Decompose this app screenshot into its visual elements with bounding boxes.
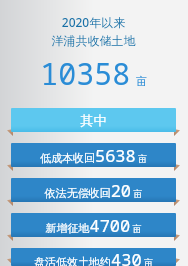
button[interactable]: 盘活低效土地约430 亩 [11, 248, 176, 266]
staticText: 其中 [11, 112, 176, 128]
staticText: 依法无偿收回20 亩 [11, 179, 176, 202]
button[interactable]: 依法无偿收回20 亩 [11, 178, 176, 202]
button[interactable]: 新增征地4700 亩 [11, 213, 176, 237]
staticText: 洋浦共收储土地 [5, 33, 182, 48]
staticText: 10358 亩 [5, 53, 182, 94]
staticText: 低成本收回5638 亩 [11, 144, 176, 167]
button[interactable]: 其中 [11, 108, 176, 132]
staticText: 2020年以来 [5, 14, 182, 30]
staticText: 新增征地4700 亩 [11, 214, 176, 237]
staticText: 盘活低效土地约430 亩 [11, 248, 176, 266]
button[interactable]: 低成本收回5638 亩 [11, 143, 176, 167]
